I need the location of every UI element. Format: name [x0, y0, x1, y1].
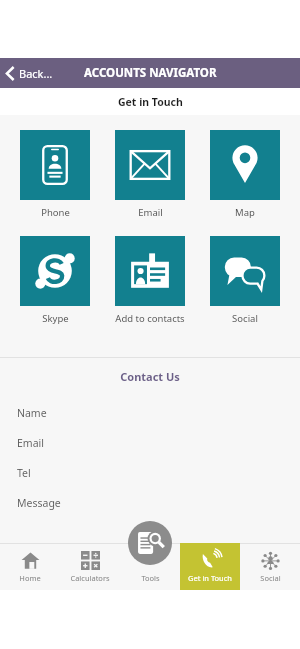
button[interactable]: Tools	[120, 543, 180, 590]
button[interactable]: Social	[240, 543, 300, 590]
staticText: Message	[17, 496, 61, 510]
staticText: ACCOUNTS NAVIGATOR	[84, 65, 217, 81]
staticText: Social	[232, 312, 258, 325]
staticText: Email	[138, 206, 163, 219]
staticText: Get in Touch	[118, 95, 183, 109]
staticText: Phone	[41, 206, 70, 219]
staticText: Tools	[141, 573, 160, 583]
button[interactable]: Email	[0, 428, 300, 458]
staticText: Calculators	[70, 573, 110, 583]
button[interactable]: Message	[0, 488, 300, 518]
staticText: Map	[235, 206, 255, 219]
button[interactable]: Email	[110, 130, 190, 219]
staticText: Name	[17, 406, 47, 420]
staticText: Email	[17, 436, 44, 450]
button[interactable]: Tools	[128, 521, 172, 565]
button[interactable]: Social	[205, 236, 285, 325]
button[interactable]: Skype	[15, 236, 95, 325]
staticText: Tel	[17, 466, 31, 480]
button[interactable]: Phone	[15, 130, 95, 219]
staticText: Add to contacts	[115, 312, 185, 325]
button[interactable]: Get in Touch	[180, 543, 240, 590]
button[interactable]: Name	[0, 398, 300, 428]
button[interactable]: Tel	[0, 458, 300, 488]
staticText: Contact Us	[0, 369, 300, 384]
staticText: Back...	[19, 66, 53, 81]
staticText: Social	[260, 573, 281, 583]
staticText: Get in Touch	[188, 573, 232, 583]
staticText: Home	[19, 573, 41, 583]
button[interactable]: Back...	[0, 62, 61, 85]
button[interactable]: Add to contacts	[110, 236, 190, 325]
button[interactable]: Map	[205, 130, 285, 219]
button[interactable]: Calculators	[60, 543, 120, 590]
button[interactable]: Home	[0, 543, 60, 590]
staticText: Skype	[42, 312, 69, 325]
